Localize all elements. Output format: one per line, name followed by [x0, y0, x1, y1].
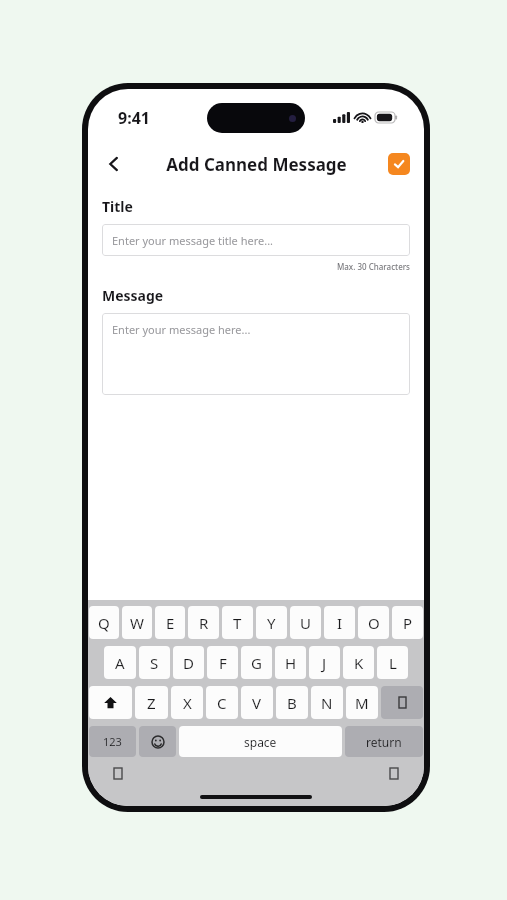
button[interactable]: space: [179, 726, 342, 757]
button[interactable]: Back: [96, 146, 132, 182]
button[interactable]: L: [377, 646, 408, 679]
button[interactable]: M: [346, 686, 378, 719]
button[interactable]: C: [206, 686, 238, 719]
button[interactable]: A: [104, 646, 136, 679]
staticText: Add Canned Message: [166, 153, 347, 176]
staticText: Enter your message here...: [112, 322, 251, 337]
button[interactable]: Q: [89, 606, 119, 639]
staticText: C: [217, 693, 227, 713]
staticText: B: [287, 693, 297, 713]
staticText: return: [366, 734, 402, 750]
button[interactable]: Delete: [381, 686, 423, 719]
staticText: R: [199, 613, 209, 633]
staticText: Q: [98, 613, 110, 633]
staticText: W: [130, 613, 144, 633]
staticText: M: [355, 693, 369, 713]
button[interactable]: return: [345, 726, 423, 757]
button[interactable]: V: [241, 686, 273, 719]
staticText: F: [219, 653, 227, 673]
button[interactable]: Enter your message here...: [102, 313, 410, 395]
button[interactable]: K: [343, 646, 374, 679]
button[interactable]: G: [241, 646, 272, 679]
button[interactable]: J: [309, 646, 340, 679]
button[interactable]: H: [275, 646, 306, 679]
staticText: 9:41: [118, 107, 150, 129]
button[interactable]: Shift: [89, 686, 132, 719]
button[interactable]: B: [276, 686, 308, 719]
staticText: K: [354, 653, 364, 673]
button[interactable]: U: [290, 606, 321, 639]
button[interactable]: S: [139, 646, 170, 679]
staticText: Z: [147, 693, 156, 713]
staticText: P: [403, 613, 413, 633]
staticText: A: [115, 653, 125, 673]
button[interactable]: P: [392, 606, 423, 639]
staticText: I: [337, 613, 343, 633]
staticText: Message: [102, 286, 164, 305]
button[interactable]: Save canned message: [388, 153, 410, 175]
staticText: Enter your message title here...: [112, 233, 274, 248]
staticText: J: [322, 653, 327, 673]
button[interactable]: Z: [135, 686, 168, 719]
staticText: G: [251, 653, 262, 673]
staticText: Max. 30 Characters: [102, 261, 410, 272]
button[interactable]: 123: [89, 726, 136, 757]
button[interactable]: Enter your message title here...: [102, 224, 410, 256]
staticText: 123: [103, 734, 122, 749]
button[interactable]: T: [222, 606, 253, 639]
button[interactable]: R: [188, 606, 219, 639]
staticText: E: [166, 613, 175, 633]
staticText: Title: [102, 197, 133, 216]
button[interactable]: W: [122, 606, 152, 639]
staticText: T: [233, 613, 242, 633]
staticText: N: [321, 693, 333, 713]
button[interactable]: Y: [256, 606, 287, 639]
button[interactable]: I: [324, 606, 355, 639]
button[interactable]: O: [358, 606, 389, 639]
button[interactable]: F: [207, 646, 238, 679]
staticText: space: [244, 734, 277, 750]
staticText: L: [389, 653, 397, 673]
staticText: X: [183, 693, 192, 713]
button[interactable]: X: [171, 686, 203, 719]
staticText: V: [252, 693, 262, 713]
staticText: H: [285, 653, 297, 673]
button[interactable]: N: [311, 686, 343, 719]
staticText: Y: [267, 613, 276, 633]
staticText: D: [183, 653, 194, 673]
button[interactable]: E: [155, 606, 185, 639]
staticText: S: [150, 653, 159, 673]
button[interactable]: D: [173, 646, 204, 679]
staticText: U: [300, 613, 311, 633]
staticText: O: [368, 613, 380, 633]
button[interactable]: Emoji: [139, 726, 176, 757]
